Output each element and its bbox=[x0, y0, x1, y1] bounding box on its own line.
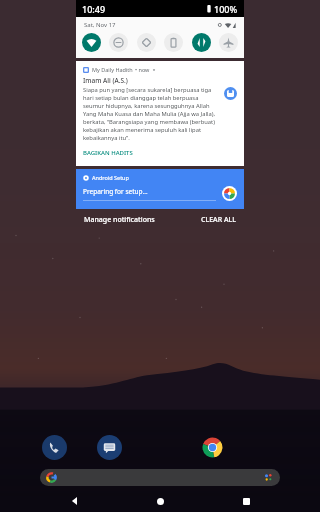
staticText: 10:49 bbox=[82, 3, 106, 15]
staticText: Android Setup bbox=[92, 174, 129, 181]
button[interactable] bbox=[40, 469, 280, 486]
button[interactable]: Recents bbox=[235, 490, 257, 512]
staticText: Manage notifications bbox=[84, 215, 155, 225]
button[interactable]: Airplane mode bbox=[219, 33, 238, 52]
button[interactable]: Messages bbox=[97, 435, 122, 460]
button[interactable]: Battery saver bbox=[164, 33, 183, 52]
button[interactable]: Manage notifications bbox=[84, 215, 155, 225]
button[interactable]: CLEAR ALL bbox=[201, 215, 236, 225]
button[interactable]: Mobile data bbox=[192, 33, 211, 52]
staticText: BAGIKAN HADITS bbox=[83, 149, 133, 157]
button[interactable]: Back bbox=[64, 490, 86, 512]
button[interactable]: Do not disturb bbox=[109, 33, 128, 52]
button[interactable]: My Daily Hadith bbox=[76, 61, 244, 166]
staticText: CLEAR ALL bbox=[201, 215, 236, 225]
staticText: • now bbox=[135, 66, 150, 73]
staticText: Preparing for setup… bbox=[83, 187, 148, 196]
button[interactable]: Wi-Fi bbox=[82, 33, 101, 52]
button[interactable]: Android Setup bbox=[76, 169, 244, 209]
button[interactable]: Phone bbox=[42, 435, 67, 460]
staticText: Sat, Nov 17 bbox=[84, 21, 116, 29]
staticText: 100% bbox=[214, 3, 238, 15]
button[interactable]: Chrome bbox=[200, 435, 225, 460]
staticText: Siapa pun yang [secara sukarela] berpuas… bbox=[83, 86, 215, 142]
staticText: Imam Ali (A.S.) bbox=[83, 76, 128, 85]
button[interactable]: BAGIKAN HADITS bbox=[83, 147, 133, 159]
button[interactable]: Auto rotate bbox=[137, 33, 156, 52]
button[interactable]: Home bbox=[149, 490, 171, 512]
staticText: My Daily Hadith bbox=[92, 66, 133, 73]
